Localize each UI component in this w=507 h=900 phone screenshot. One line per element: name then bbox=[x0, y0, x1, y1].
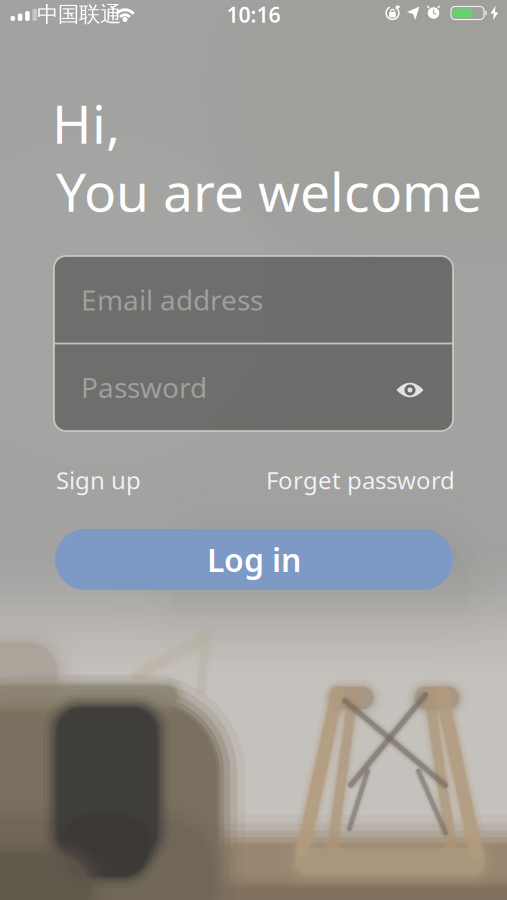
button[interactable]: Show password bbox=[383, 363, 437, 417]
staticText: Email address bbox=[81, 281, 263, 318]
button[interactable]: Email address bbox=[81, 260, 426, 339]
button[interactable]: Log in bbox=[55, 529, 453, 590]
staticText: Password bbox=[81, 369, 207, 406]
staticText: Log in bbox=[207, 538, 301, 581]
button[interactable]: Sign up bbox=[56, 459, 216, 501]
button[interactable]: Forget password bbox=[195, 459, 455, 501]
staticText: Forget password bbox=[266, 464, 455, 496]
staticText: 中国联通 bbox=[37, 1, 121, 28]
staticText: Sign up bbox=[56, 464, 141, 496]
staticText: You are welcome bbox=[56, 156, 482, 226]
staticText: Hi, bbox=[52, 88, 120, 158]
staticText: 10:16 bbox=[226, 0, 280, 29]
button[interactable]: Password bbox=[81, 347, 346, 427]
